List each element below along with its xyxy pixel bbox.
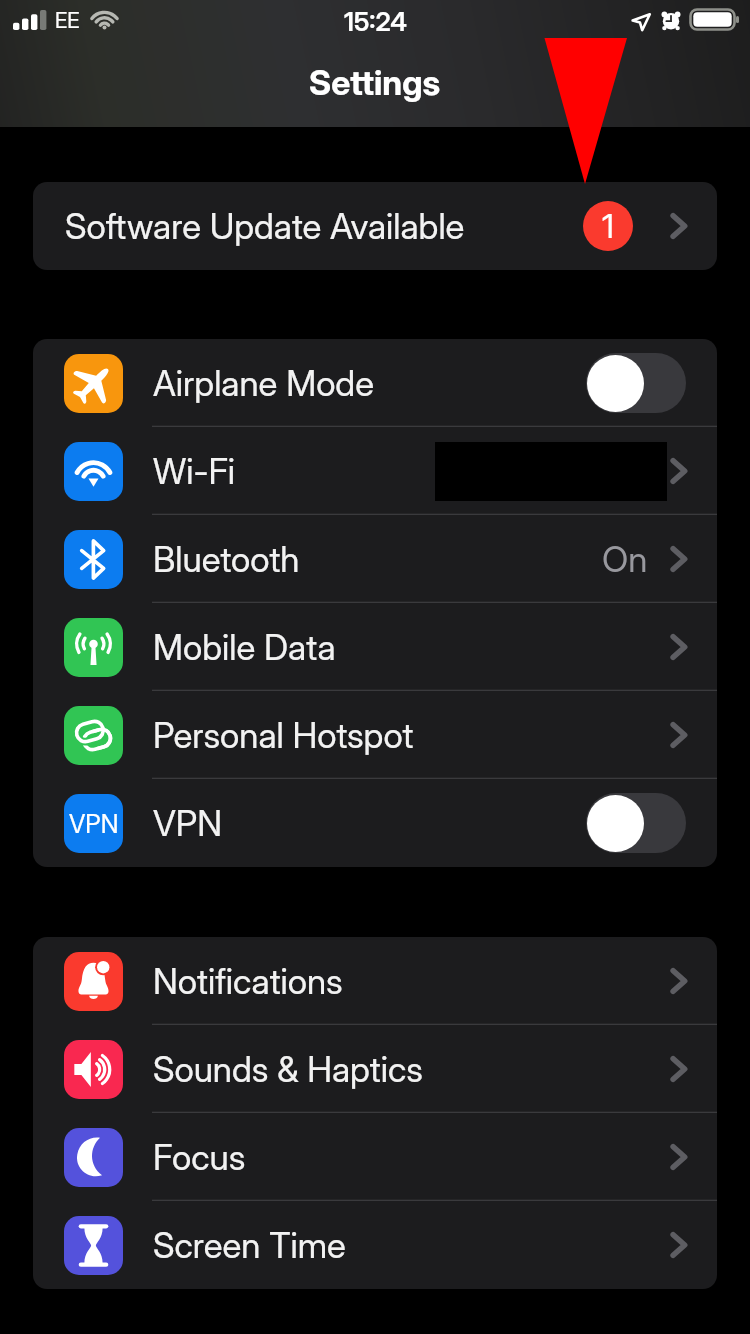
button[interactable]: VPN [33,779,717,867]
staticText: Notifications [153,960,343,1002]
button[interactable]: Mobile Data [33,603,717,691]
button[interactable]: Focus [33,1113,717,1201]
button[interactable]: Notifications [33,937,717,1025]
button[interactable]: Screen Time [33,1201,717,1289]
staticText: Mobile Data [153,626,336,668]
staticText: Personal Hotspot [153,714,414,756]
button[interactable]: Software Update Available [33,182,717,270]
staticText: EE [55,8,80,33]
staticText: VPN [153,802,223,844]
staticText: Software Update Available [65,205,465,247]
staticText: Focus [153,1136,246,1178]
button[interactable]: Sounds & Haptics [33,1025,717,1113]
staticText: 1 [602,206,614,246]
staticText: On [602,538,648,580]
button[interactable]: Wi-Fi [33,427,717,515]
staticText: 15:24 [344,6,407,37]
button[interactable]: Personal Hotspot [33,691,717,779]
staticText: Airplane Mode [153,362,374,404]
staticText: Screen Time [153,1224,346,1266]
staticText: Settings [309,62,441,103]
button[interactable]: Toggle off [586,353,686,413]
button[interactable]: Airplane Mode [33,339,717,427]
button[interactable]: Toggle off [586,793,686,853]
staticText: VPN [69,809,119,839]
staticText: Bluetooth [153,538,300,580]
button[interactable]: Bluetooth [33,515,717,603]
staticText: Wi-Fi [153,450,236,492]
staticText: Sounds & Haptics [153,1048,423,1090]
